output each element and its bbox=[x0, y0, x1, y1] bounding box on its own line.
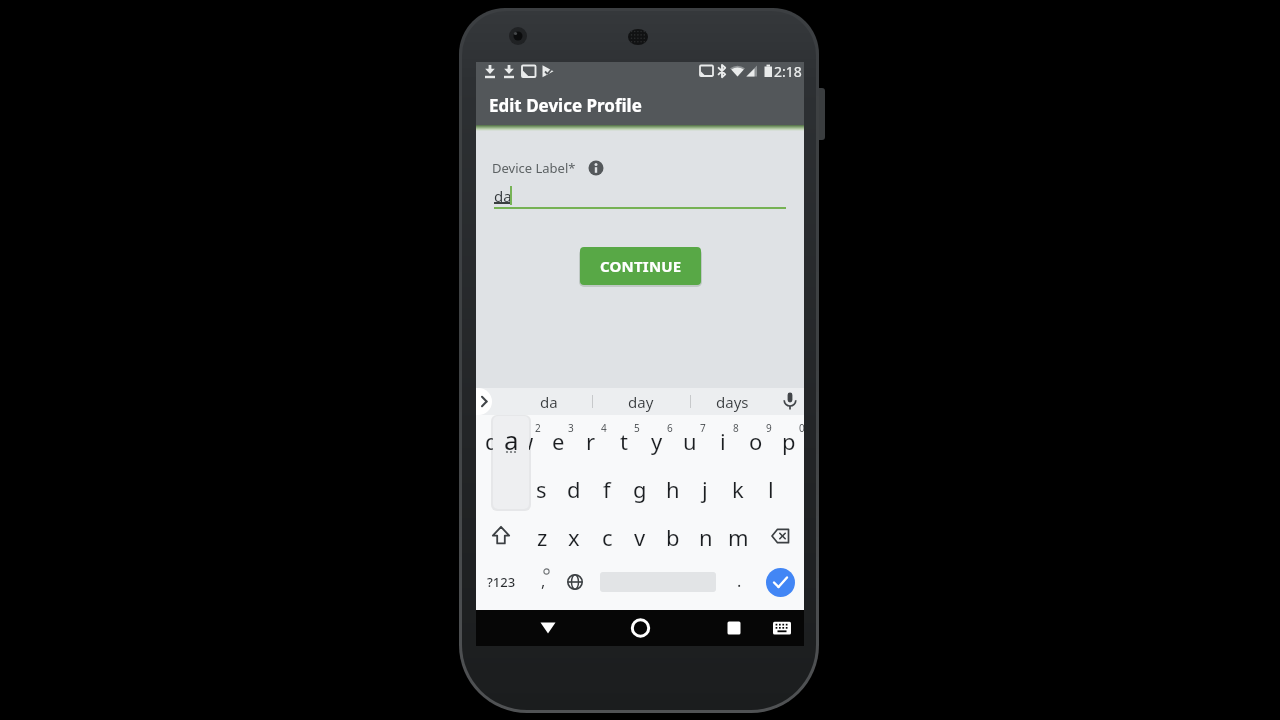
staticText: n bbox=[699, 522, 713, 552]
button[interactable]: k bbox=[722, 471, 754, 507]
button[interactable]: n bbox=[690, 519, 722, 555]
staticText: 8 bbox=[733, 421, 739, 434]
staticText: k bbox=[732, 474, 744, 504]
staticText: 7 bbox=[700, 421, 706, 434]
staticText: 6 bbox=[667, 421, 673, 434]
staticText: o bbox=[749, 426, 763, 456]
staticText: da bbox=[494, 186, 512, 206]
button[interactable]: w bbox=[509, 423, 541, 459]
staticText: u bbox=[683, 426, 697, 456]
staticText: 4 bbox=[601, 421, 607, 434]
button[interactable]: v bbox=[624, 519, 656, 555]
staticText: t bbox=[620, 426, 628, 456]
staticText: z bbox=[537, 522, 548, 552]
button[interactable]: x bbox=[558, 519, 590, 555]
button[interactable]: l bbox=[755, 471, 787, 507]
button[interactable]: d bbox=[558, 471, 590, 507]
staticText: 0 bbox=[799, 421, 804, 434]
button[interactable]: CONTINUE bbox=[580, 247, 701, 285]
button[interactable]: y bbox=[641, 423, 673, 459]
button[interactable]: p bbox=[773, 423, 804, 459]
staticText: h bbox=[666, 474, 680, 504]
button[interactable]: q bbox=[476, 423, 508, 459]
button[interactable]: , bbox=[536, 568, 550, 594]
button[interactable]: o bbox=[740, 423, 772, 459]
staticText: 2 bbox=[535, 421, 541, 434]
staticText: 9 bbox=[766, 421, 772, 434]
staticText: f bbox=[603, 474, 611, 504]
button[interactable]: t bbox=[608, 423, 640, 459]
button[interactable]: day bbox=[611, 388, 671, 415]
button[interactable]: s bbox=[525, 471, 557, 507]
button[interactable] bbox=[718, 612, 750, 644]
button[interactable]: i bbox=[707, 423, 739, 459]
button[interactable]: da bbox=[494, 186, 554, 206]
button[interactable]: . bbox=[732, 568, 746, 594]
staticText: Edit Device Profile bbox=[489, 94, 642, 117]
staticText: e bbox=[552, 426, 565, 456]
staticText: p bbox=[782, 426, 796, 456]
button[interactable] bbox=[564, 568, 586, 596]
staticText: q bbox=[485, 426, 499, 456]
staticText: g bbox=[633, 474, 647, 504]
staticText: days bbox=[716, 392, 749, 412]
button[interactable]: da bbox=[519, 388, 579, 415]
button[interactable]: h bbox=[657, 471, 689, 507]
staticText: Device Label* bbox=[492, 159, 576, 177]
button[interactable]: g bbox=[624, 471, 656, 507]
staticText: c bbox=[602, 522, 613, 552]
staticText: 3 bbox=[568, 421, 574, 434]
staticText: y bbox=[651, 426, 663, 456]
staticText: 5 bbox=[634, 421, 640, 434]
button[interactable] bbox=[624, 612, 656, 644]
button[interactable]: f bbox=[591, 471, 623, 507]
staticText: 2:18 bbox=[774, 62, 802, 81]
button[interactable] bbox=[766, 568, 795, 597]
staticText: day bbox=[628, 392, 654, 412]
button[interactable] bbox=[766, 612, 798, 644]
staticText: d bbox=[567, 474, 581, 504]
button[interactable]: c bbox=[591, 519, 623, 555]
staticText: . bbox=[737, 570, 742, 592]
staticText: v bbox=[634, 522, 646, 552]
button[interactable]: j bbox=[689, 471, 721, 507]
button[interactable]: m bbox=[722, 519, 754, 555]
button[interactable] bbox=[484, 520, 518, 552]
staticText: w bbox=[516, 426, 534, 456]
staticText: s bbox=[536, 474, 547, 504]
staticText: l bbox=[768, 474, 774, 504]
staticText: b bbox=[666, 522, 680, 552]
button[interactable]: u bbox=[674, 423, 706, 459]
staticText: ?123 bbox=[487, 573, 516, 591]
staticText: da bbox=[540, 392, 558, 412]
staticText: CONTINUE bbox=[600, 256, 682, 276]
button[interactable] bbox=[476, 388, 492, 415]
button[interactable]: days bbox=[702, 388, 762, 415]
staticText: j bbox=[702, 474, 708, 504]
staticText: m bbox=[728, 522, 749, 552]
staticText: x bbox=[568, 522, 580, 552]
staticText: , bbox=[541, 570, 546, 592]
staticText: r bbox=[586, 426, 596, 456]
button[interactable]: r bbox=[575, 423, 607, 459]
button[interactable]: e bbox=[542, 423, 574, 459]
staticText: i bbox=[720, 426, 726, 456]
button[interactable]: z bbox=[526, 519, 558, 555]
button[interactable] bbox=[532, 612, 564, 644]
button[interactable]: b bbox=[657, 519, 689, 555]
button[interactable]: ?123 bbox=[486, 571, 516, 593]
button[interactable] bbox=[763, 520, 797, 552]
staticText: a bbox=[504, 422, 519, 454]
